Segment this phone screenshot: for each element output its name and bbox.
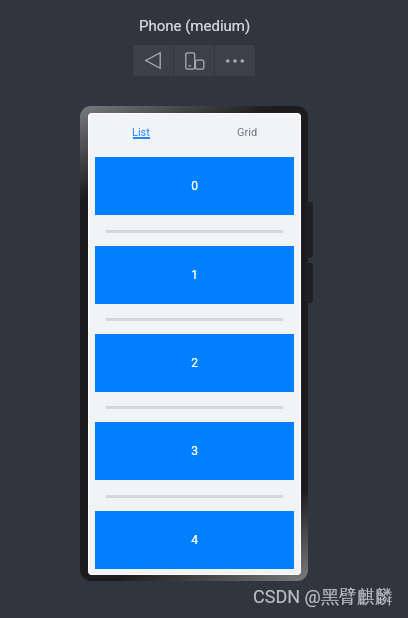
staticText: Phone (medium) <box>139 17 251 35</box>
button[interactable]: 3 <box>95 422 294 480</box>
staticText: Grid <box>237 126 258 139</box>
button[interactable]: 1 <box>95 246 294 304</box>
staticText: 0 <box>191 179 198 193</box>
staticText: 2 <box>191 356 198 370</box>
button[interactable]: List <box>88 113 194 157</box>
staticText: CSDN @黑臂麒麟 <box>253 586 393 609</box>
button[interactable]: Back <box>133 45 173 76</box>
button[interactable]: More options <box>215 45 255 76</box>
button[interactable]: 4 <box>95 511 294 569</box>
button[interactable]: 0 <box>95 157 294 215</box>
button[interactable]: Grid <box>194 113 300 157</box>
staticText: 3 <box>191 444 198 458</box>
button[interactable]: 2 <box>95 334 294 392</box>
button[interactable]: Rotate device <box>174 45 214 76</box>
staticText: List <box>132 126 150 139</box>
staticText: 4 <box>191 533 198 547</box>
staticText: 1 <box>191 268 198 282</box>
